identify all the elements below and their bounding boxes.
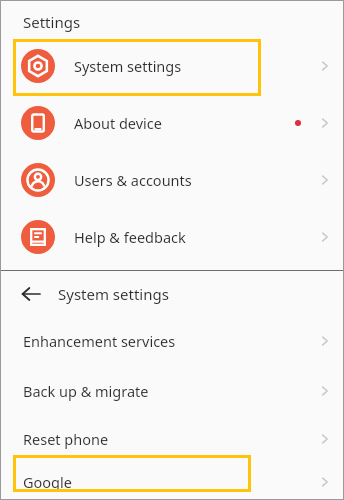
button[interactable]: System settings (0, 37, 344, 94)
button[interactable]: About device (0, 94, 344, 151)
button[interactable]: Google (0, 463, 344, 500)
staticText: Users & accounts (74, 170, 192, 190)
staticText: System settings (58, 284, 169, 304)
staticText: Settings (23, 12, 81, 32)
button[interactable]: Enhancement services (0, 316, 344, 366)
staticText: System settings (74, 56, 182, 76)
button[interactable]: Back up & migrate (0, 366, 344, 415)
other: Back (21, 284, 41, 304)
staticText: Enhancement services (23, 331, 176, 351)
button[interactable]: Users & accounts (0, 151, 344, 208)
button[interactable]: Help & feedback (0, 208, 344, 265)
staticText: Google (23, 472, 72, 492)
staticText: About device (74, 113, 162, 133)
staticText: Help & feedback (74, 227, 186, 247)
button[interactable]: Back (0, 271, 344, 316)
staticText: Back up & migrate (23, 381, 149, 401)
button[interactable]: Reset phone (0, 415, 344, 463)
staticText: Reset phone (23, 429, 109, 449)
